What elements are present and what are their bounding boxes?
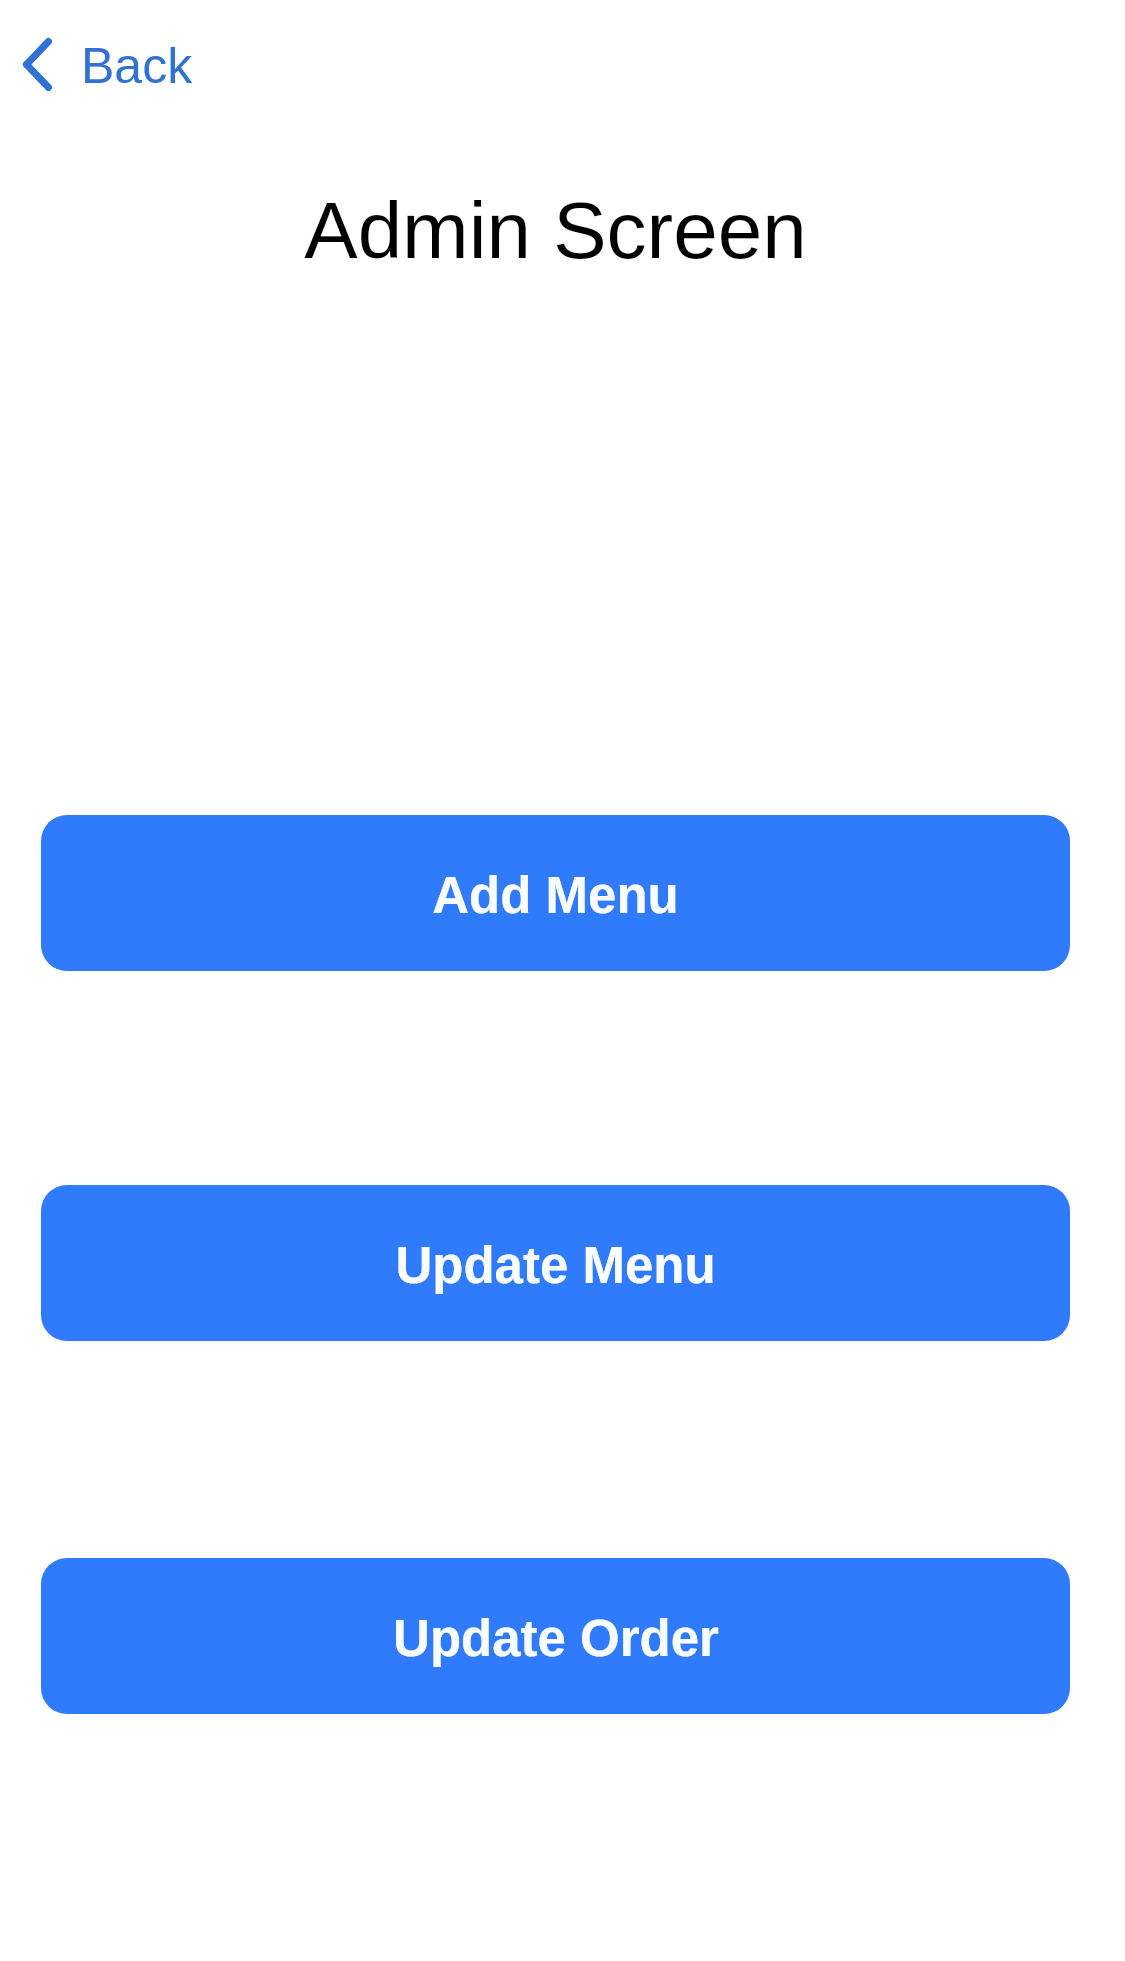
staticText: Update Menu: [395, 1237, 716, 1294]
button[interactable]: Add Menu: [41, 815, 1070, 971]
staticText: Add Menu: [432, 867, 679, 924]
staticText: Back: [81, 38, 193, 94]
staticText: Admin Screen: [304, 186, 807, 275]
button[interactable]: Update Menu: [41, 1185, 1070, 1341]
staticText: Update Order: [393, 1610, 719, 1667]
button[interactable]: Update Order: [41, 1558, 1070, 1714]
button[interactable]: Back: [15, 30, 201, 102]
